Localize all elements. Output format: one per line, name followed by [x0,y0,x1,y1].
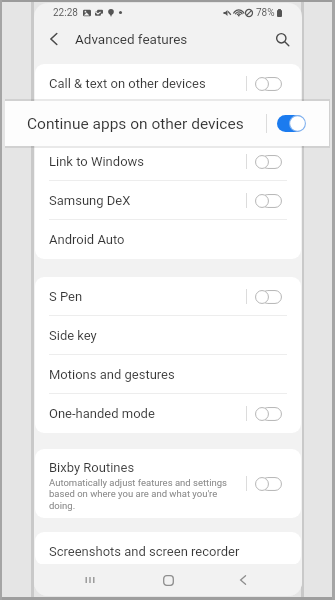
staticText: Bixby Routines [49,460,135,475]
staticText: 22:28 [53,7,78,19]
button[interactable]: Recent apps [71,564,108,596]
button[interactable]: Side key [35,316,301,355]
button[interactable]: Home [150,564,187,596]
button[interactable]: One-handed mode [35,394,301,433]
button[interactable]: Android Auto [35,220,301,259]
staticText: Link to Windows [49,154,145,169]
button[interactable]: Back [224,564,261,596]
button[interactable]: S Pen [35,277,301,316]
button[interactable]: Motions and gestures [35,355,301,394]
staticText: Continue apps on other devices [27,115,244,133]
button[interactable]: Link to Windows [35,142,301,181]
staticText: Samsung DeX [49,193,131,208]
staticText: Android Auto [49,232,125,247]
button[interactable]: Samsung DeX [35,181,301,220]
button[interactable]: Continue apps on other devices [35,103,301,142]
staticText: Advanced features [75,31,188,47]
staticText: Side key [49,328,97,343]
staticText: One-handed mode [49,406,155,421]
button[interactable]: Bixby Routines [35,449,301,518]
button[interactable]: Search [270,27,294,51]
button[interactable]: Call & text on other devices [35,64,301,103]
staticText: Motions and gestures [49,367,175,382]
staticText: S Pen [49,289,83,304]
button[interactable]: Screenshots and screen recorder [35,532,301,565]
staticText: Automatically adjust features and settin… [49,477,227,511]
staticText: Call & text on other devices [49,76,206,91]
staticText: Continue apps on other devices [49,115,231,130]
button[interactable]: Continue apps on other devices [5,101,329,146]
staticText: 78% [256,7,275,19]
button[interactable]: Back [42,27,66,51]
staticText: Screenshots and screen recorder [49,544,240,559]
